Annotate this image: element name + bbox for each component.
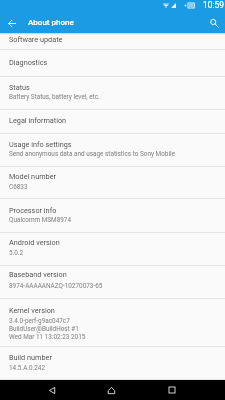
staticText: Send anonymous data and usage statistics… <box>9 150 175 158</box>
button[interactable]: Recent apps <box>162 380 182 400</box>
staticText: Legal information <box>9 116 67 125</box>
staticText: Baseband version <box>9 270 67 279</box>
button[interactable] <box>0 34 225 49</box>
staticText: Qualcomm MSM8974 <box>9 216 72 224</box>
button[interactable] <box>0 50 225 76</box>
staticText: Status <box>9 83 30 92</box>
staticText: BuildUser@BuildHost #1 <box>9 325 79 333</box>
staticText: Usage info settings <box>9 140 72 149</box>
button[interactable] <box>0 233 225 265</box>
staticText: 3.4.0-perf-g9ac047c7 <box>9 317 70 325</box>
staticText: Software update <box>9 35 63 44</box>
staticText: Wed Mar 11 13:02:23 2015 <box>9 333 86 341</box>
button[interactable]: Navigate up <box>3 14 21 32</box>
button[interactable] <box>0 199 225 231</box>
staticText: Model number <box>9 172 56 181</box>
staticText: 10:59 <box>203 0 224 10</box>
staticText: 8974-AAAAANAZQ-10270073-65 <box>9 282 103 290</box>
button[interactable]: Home <box>101 380 121 400</box>
staticText: Build number <box>9 353 52 362</box>
staticText: 14.5.A.0.242 <box>9 364 46 372</box>
button[interactable] <box>0 77 225 109</box>
button[interactable] <box>0 266 225 298</box>
button[interactable] <box>0 134 225 166</box>
button[interactable] <box>0 167 225 199</box>
staticText: 5.0.2 <box>9 249 24 257</box>
staticText: Kernel version <box>9 306 55 315</box>
staticText: C6833 <box>9 183 28 191</box>
staticText: Diagnostics <box>9 58 48 67</box>
button[interactable] <box>0 347 225 379</box>
staticText: About phone <box>28 18 74 27</box>
staticText: Battery Status, battery level, etc. <box>9 93 100 101</box>
staticText: Android version <box>9 238 60 247</box>
button[interactable]: Search <box>205 14 223 32</box>
button[interactable]: Back <box>42 380 62 400</box>
staticText: Processor info <box>9 206 57 215</box>
button[interactable] <box>0 110 225 133</box>
button[interactable] <box>0 299 225 346</box>
